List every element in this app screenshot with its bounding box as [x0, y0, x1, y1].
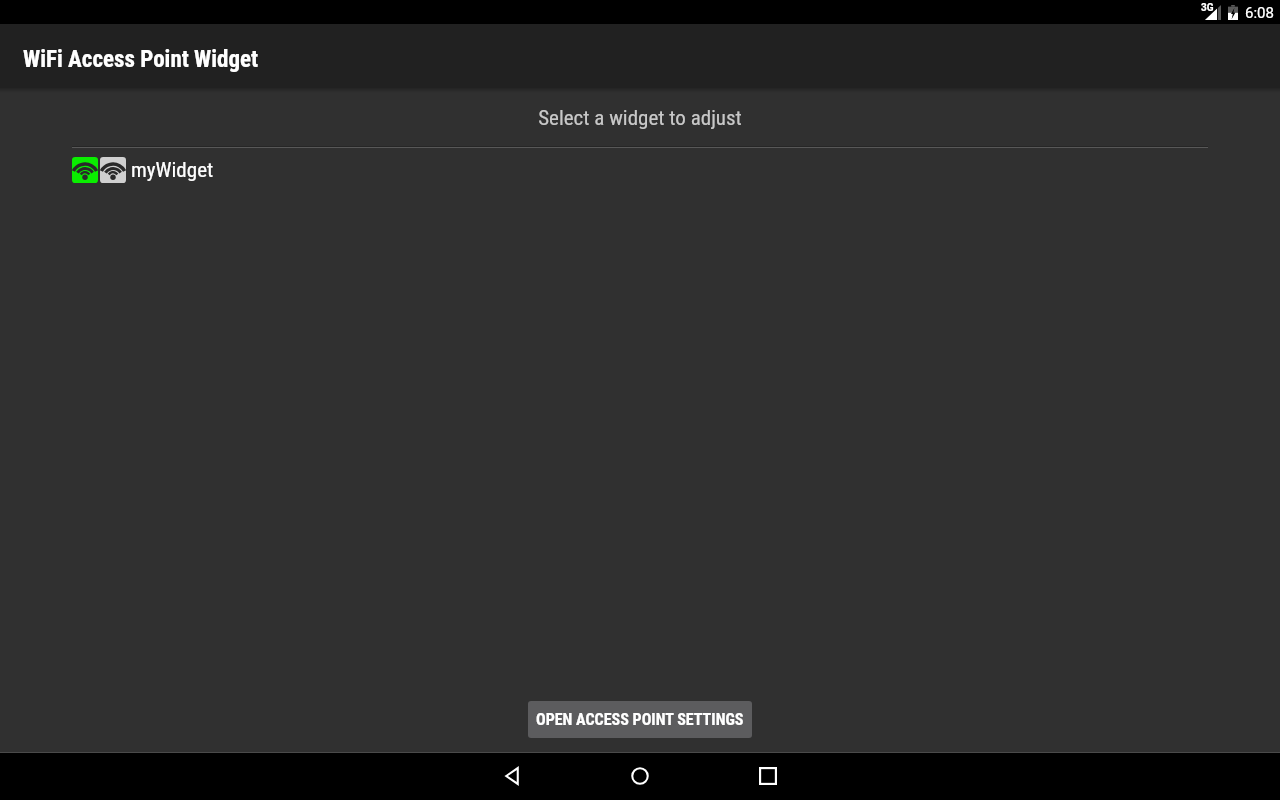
staticText: 3G [1201, 2, 1214, 14]
button[interactable]: Home [600, 752, 680, 800]
staticText: Select a widget to adjust [0, 106, 1280, 131]
button[interactable]: OPEN ACCESS POINT SETTINGS [528, 701, 752, 738]
staticText: OPEN ACCESS POINT SETTINGS [536, 710, 744, 729]
staticText: WiFi Access Point Widget [23, 46, 259, 73]
button[interactable]: myWidget [0, 153, 1280, 187]
button[interactable]: Back [472, 752, 552, 800]
staticText: myWidget [131, 158, 214, 183]
staticText: 6:08 [1245, 4, 1274, 22]
button[interactable]: Recent apps [728, 752, 808, 800]
